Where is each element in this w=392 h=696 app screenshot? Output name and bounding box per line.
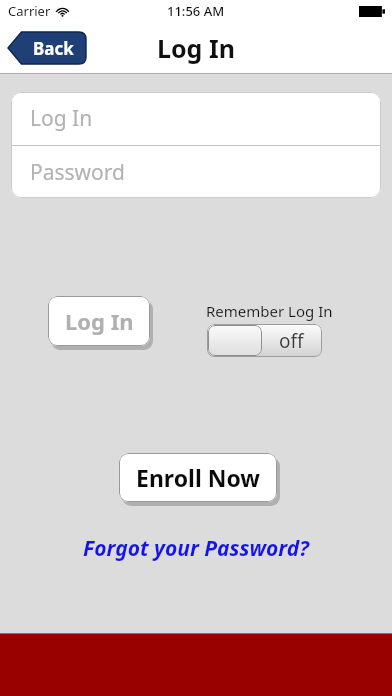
button[interactable]: Back — [8, 32, 86, 64]
button[interactable]: Enroll Now — [119, 453, 277, 502]
button[interactable]: Password — [11, 146, 381, 198]
staticText: Enroll Now — [136, 462, 261, 493]
button[interactable]: Forgot your Password? — [0, 532, 392, 564]
staticText: Password — [30, 158, 125, 187]
staticText: Log In — [30, 104, 93, 133]
staticText: Forgot your Password? — [83, 534, 309, 563]
button[interactable]: Log In — [48, 296, 150, 346]
button[interactable]: Log In — [11, 92, 381, 145]
staticText: Log In — [65, 306, 134, 336]
staticText: Carrier — [8, 2, 51, 20]
staticText: 11:56 AM — [167, 2, 225, 20]
staticText: Back — [33, 37, 74, 60]
staticText: Log In — [157, 31, 235, 65]
button[interactable]: Remember Log In toggle, off — [207, 324, 322, 357]
staticText: off — [279, 328, 304, 354]
staticText: Remember Log In — [206, 301, 333, 321]
